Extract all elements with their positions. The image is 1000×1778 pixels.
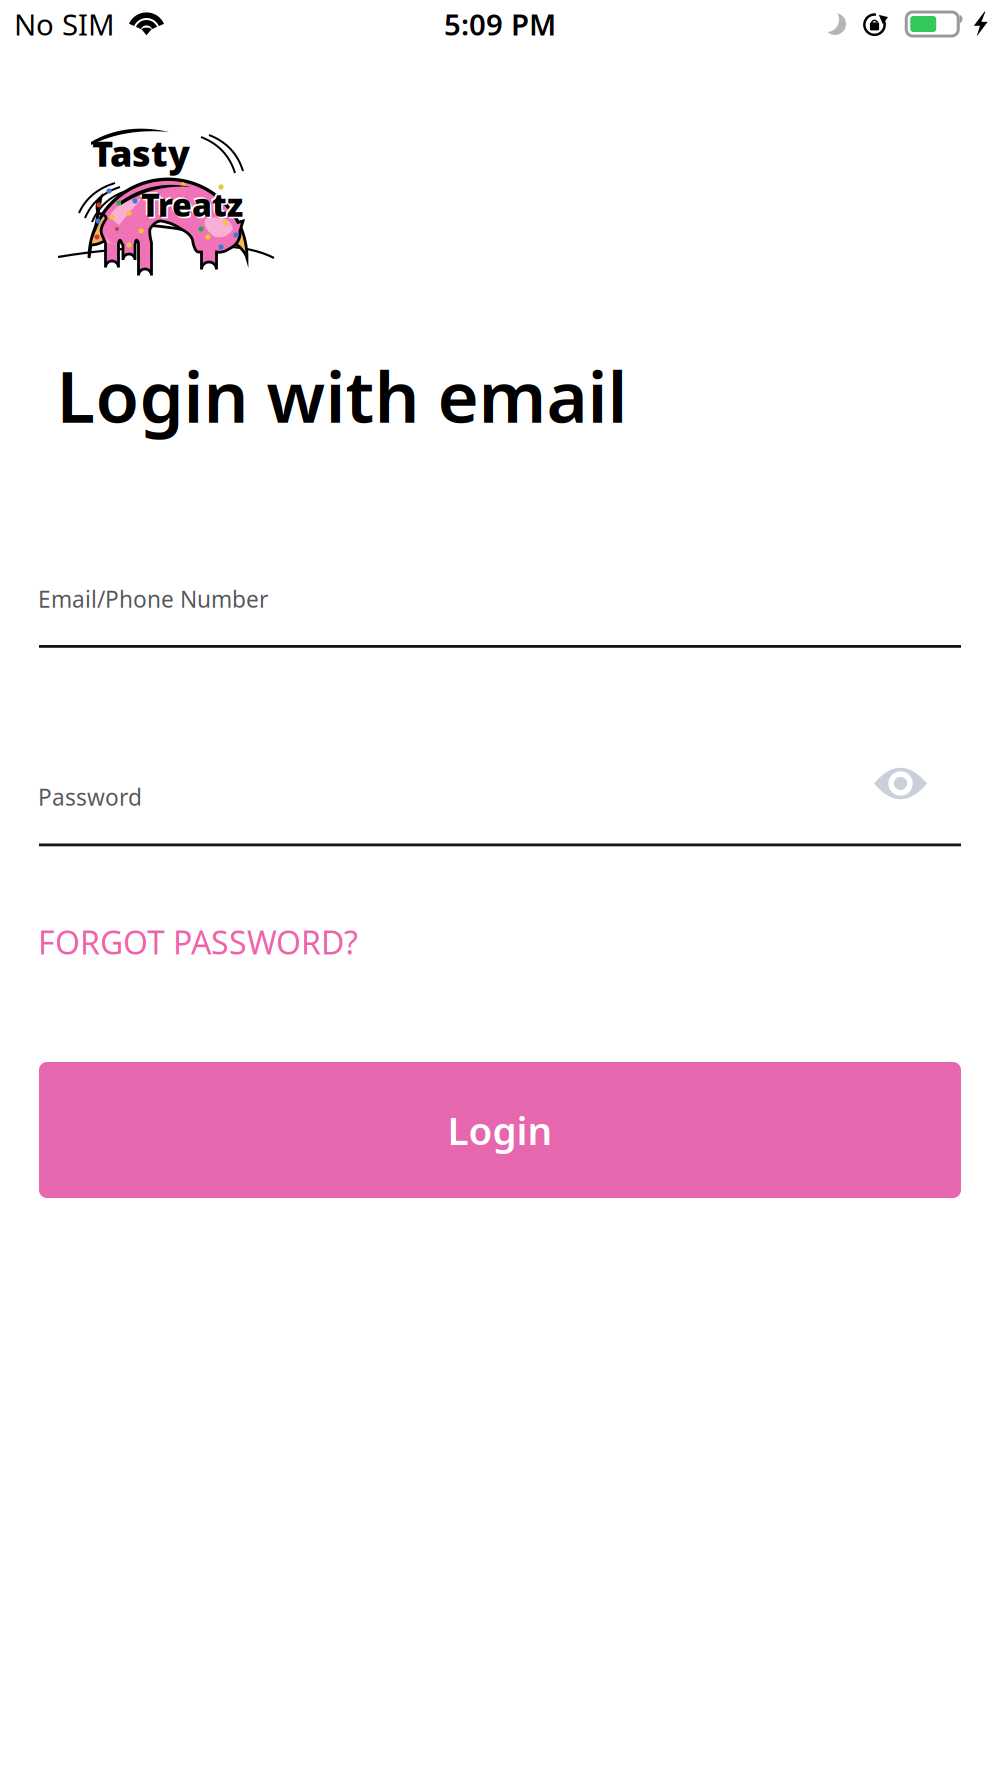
button[interactable]: Password bbox=[39, 772, 961, 846]
staticText: Login bbox=[447, 1104, 552, 1156]
staticText: Password bbox=[38, 782, 142, 812]
staticText: Treatz bbox=[142, 184, 244, 227]
button[interactable]: Login bbox=[39, 1062, 961, 1198]
staticText: Login with email bbox=[56, 348, 627, 442]
staticText: Treatz bbox=[141, 183, 243, 225]
staticText: Treatz bbox=[139, 181, 241, 224]
staticText: FORGOT PASSWORD? bbox=[38, 921, 358, 963]
staticText: Tasty bbox=[92, 129, 190, 177]
button[interactable]: FORGOT PASSWORD? bbox=[38, 921, 358, 963]
staticText: 5:09 PM bbox=[444, 4, 556, 43]
staticText: Email/Phone Number bbox=[38, 584, 268, 614]
button[interactable]: Show password bbox=[874, 765, 927, 802]
staticText: No SIM bbox=[14, 4, 115, 43]
button[interactable]: Email/Phone Number bbox=[39, 574, 961, 648]
